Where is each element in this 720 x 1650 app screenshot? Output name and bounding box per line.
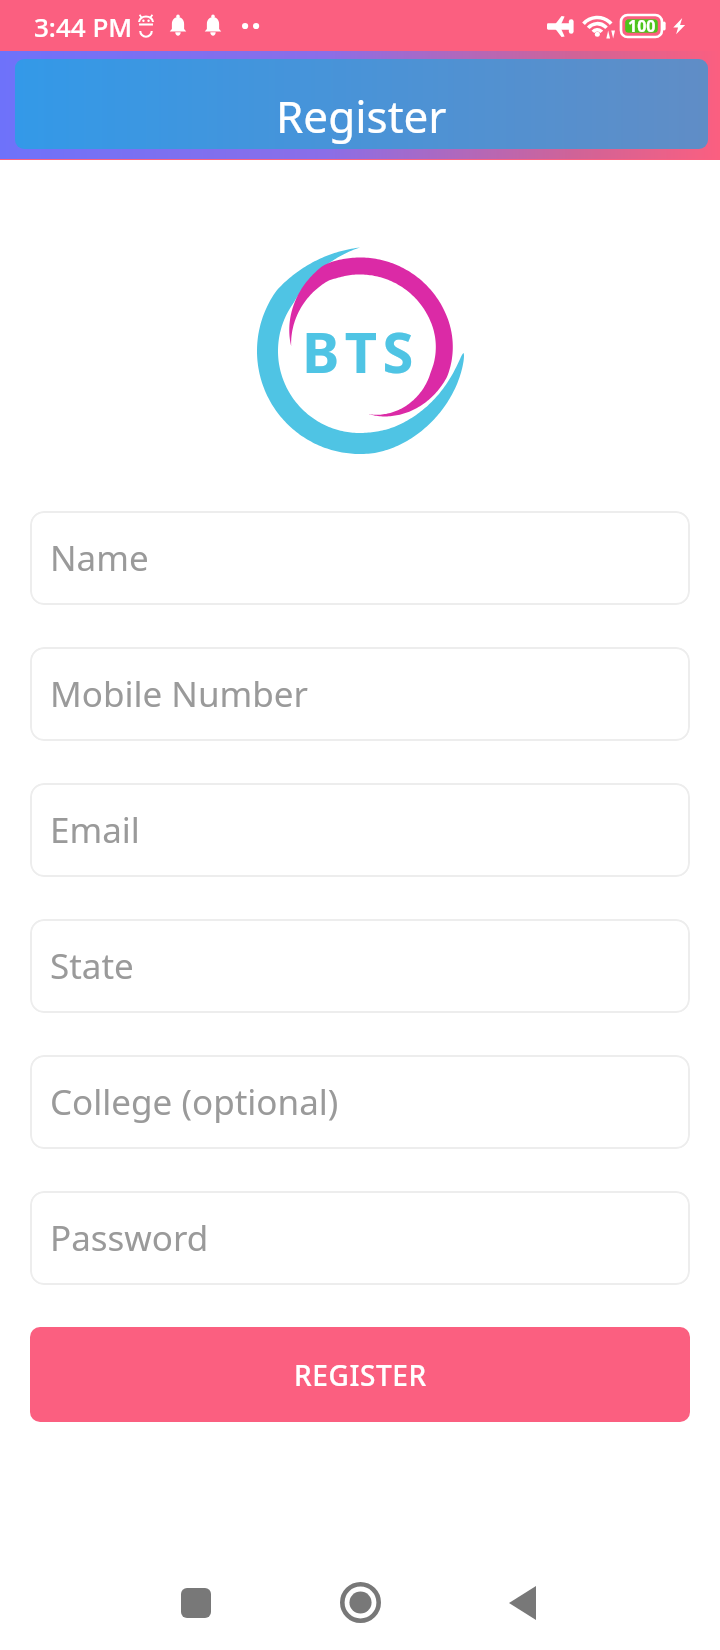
staticText: Mobile Number [50,670,309,718]
staticText: College (optional) [50,1078,339,1126]
button[interactable]: Name [30,511,690,605]
button[interactable]: Register [15,59,708,149]
staticText: 100 [628,15,656,37]
button[interactable]: Email [30,783,690,877]
button[interactable]: College (optional) [30,1055,690,1149]
staticText: Name [50,534,149,582]
staticText: REGISTER [294,1356,427,1394]
staticText: Password [50,1214,209,1262]
button[interactable]: Mobile Number [30,647,690,741]
button[interactable]: Back [450,1555,630,1650]
button[interactable]: Home [270,1555,450,1650]
button[interactable]: State [30,919,690,1013]
staticText: 3:44 PM [34,9,133,44]
staticText: State [50,942,134,990]
button[interactable]: Password [30,1191,690,1285]
staticText: Email [50,806,140,854]
button[interactable]: REGISTER [30,1327,690,1422]
button[interactable]: Recent apps [90,1555,270,1650]
staticText: BTS [302,313,419,389]
staticText: Register [276,86,447,146]
